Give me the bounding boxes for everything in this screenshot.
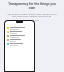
staticText: See exactly what is inside every product…	[5, 12, 59, 18]
staticText: Transparency for the things you own	[5, 2, 59, 10]
button[interactable]	[5, 34, 34, 38]
staticText: Available now	[26, 19, 39, 22]
button[interactable]	[5, 42, 34, 46]
button[interactable]	[5, 26, 34, 30]
button[interactable]	[5, 30, 34, 34]
button[interactable]	[5, 38, 34, 42]
